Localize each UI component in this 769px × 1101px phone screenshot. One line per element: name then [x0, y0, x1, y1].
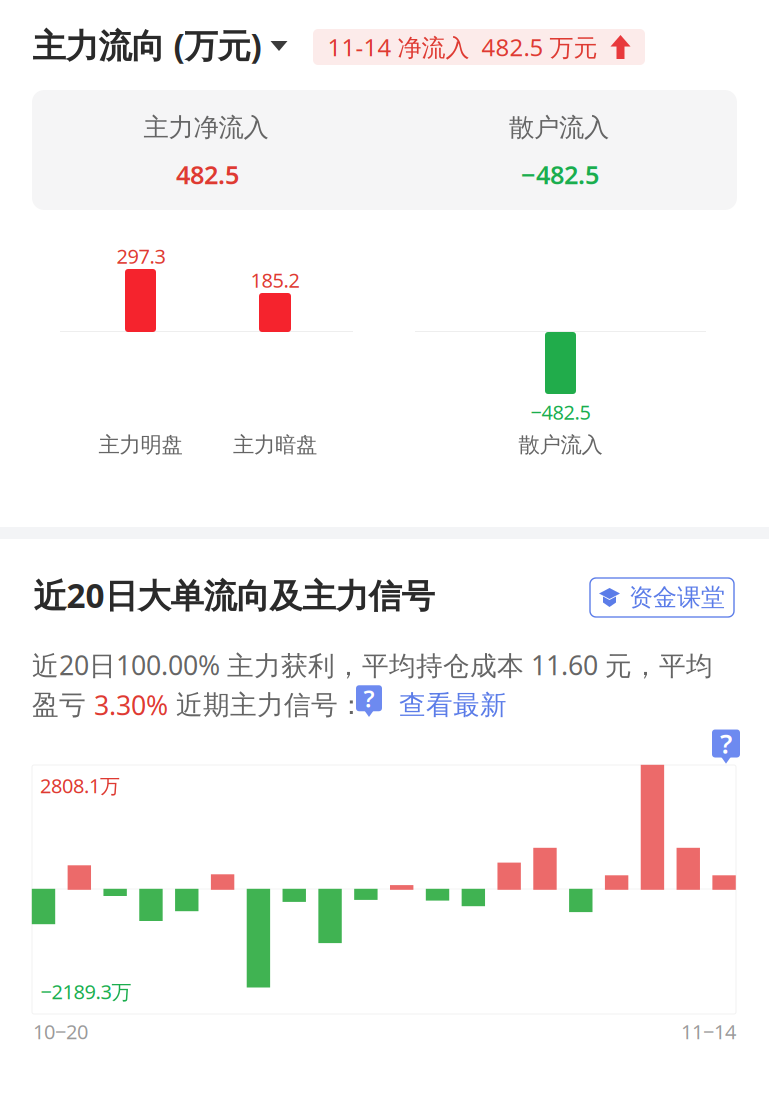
staticText: 482.5	[176, 158, 239, 191]
staticText: 11-14 净流入 482.5 万元	[327, 31, 597, 63]
staticText: ?	[720, 726, 732, 761]
staticText: −2189.3万	[40, 978, 131, 1005]
staticText: 3.30%	[94, 687, 168, 723]
staticText: 2808.1万	[40, 772, 120, 799]
staticText: 主力流向 (万元)	[32, 23, 261, 67]
staticText: 185.2	[250, 267, 299, 293]
staticText: 10−20	[33, 1018, 88, 1045]
staticText: 11−14	[681, 1018, 736, 1045]
staticText: 散户流入	[518, 432, 602, 458]
button[interactable]: 主力信号说明	[356, 688, 382, 714]
staticText: 297.3	[116, 243, 165, 269]
staticText: 资金课堂	[629, 583, 725, 612]
staticText: 近20日大单流向及主力信号	[33, 573, 434, 617]
staticText: −482.5	[521, 158, 599, 191]
staticText: 主力暗盘	[233, 432, 317, 458]
staticText: 近20日100.00% 主力获利，平均持仓成本 11.60 元，平均	[32, 647, 713, 683]
staticText: 盈亏	[32, 689, 94, 721]
staticText: 主力净流入	[143, 112, 268, 143]
button[interactable]: 切换周期	[259, 26, 299, 66]
button[interactable]: 说明	[712, 733, 740, 761]
staticText: 查看最新	[399, 689, 507, 721]
staticText: 散户流入	[509, 112, 609, 143]
button[interactable]: 查看最新	[399, 689, 507, 721]
staticText: 主力明盘	[98, 432, 182, 458]
staticText: ?	[363, 682, 374, 714]
button[interactable]: 11-14 净流入 482.5 万元	[313, 29, 645, 65]
staticText: −482.5	[530, 399, 590, 425]
button[interactable]: 资金课堂	[590, 578, 734, 617]
staticText: 近期主力信号：	[168, 689, 365, 721]
